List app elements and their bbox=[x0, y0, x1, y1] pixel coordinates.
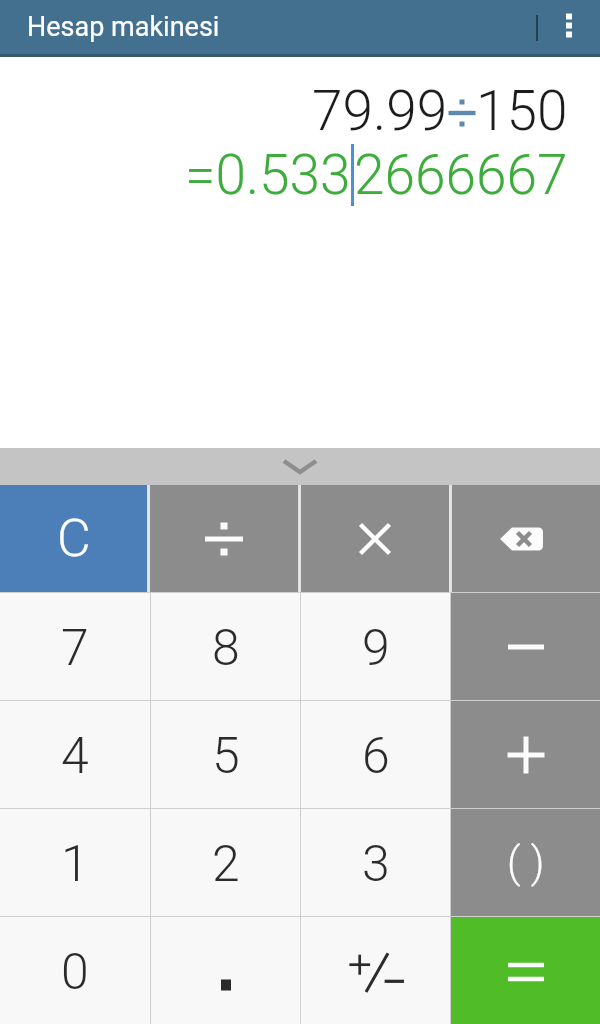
staticText: 150 bbox=[476, 79, 568, 143]
button[interactable] bbox=[301, 485, 449, 592]
staticText: Hesap makinesi bbox=[27, 11, 220, 43]
button[interactable] bbox=[0, 448, 600, 485]
button[interactable]: 5 bbox=[151, 701, 300, 808]
button[interactable] bbox=[451, 917, 600, 1024]
button[interactable]: 2 bbox=[151, 809, 300, 916]
button[interactable] bbox=[150, 485, 298, 592]
staticText: 7 bbox=[61, 619, 89, 678]
staticText: 9 bbox=[362, 619, 390, 678]
staticText: 79.99 bbox=[312, 79, 448, 143]
button[interactable]: C bbox=[0, 485, 147, 592]
staticText: 5 bbox=[212, 727, 240, 786]
button[interactable]: 0 bbox=[0, 917, 150, 1024]
button[interactable]: 6 bbox=[301, 701, 450, 808]
staticText: 0 bbox=[61, 943, 89, 1002]
button[interactable]: 4 bbox=[0, 701, 150, 808]
button[interactable] bbox=[451, 701, 600, 808]
staticText: 3 bbox=[362, 835, 390, 894]
button[interactable] bbox=[301, 917, 450, 1024]
staticText: C bbox=[57, 508, 91, 569]
button[interactable]: 1 bbox=[0, 809, 150, 916]
staticText: 6 bbox=[362, 727, 390, 786]
button[interactable] bbox=[538, 0, 600, 55]
button[interactable]: ( ) bbox=[451, 809, 600, 916]
staticText: 4 bbox=[61, 727, 89, 786]
button[interactable]: 8 bbox=[151, 593, 300, 700]
button[interactable] bbox=[151, 917, 300, 1024]
staticText: ( ) bbox=[507, 838, 545, 887]
button[interactable]: 7 bbox=[0, 593, 150, 700]
staticText: 1 bbox=[61, 835, 89, 894]
button[interactable] bbox=[451, 593, 600, 700]
staticText: =0.533 bbox=[185, 143, 351, 207]
button[interactable]: 9 bbox=[301, 593, 450, 700]
button[interactable] bbox=[452, 485, 600, 592]
staticText: 2666667 bbox=[354, 143, 568, 207]
button[interactable]: 3 bbox=[301, 809, 450, 916]
staticText: 2 bbox=[212, 835, 240, 894]
staticText: 8 bbox=[212, 619, 240, 678]
